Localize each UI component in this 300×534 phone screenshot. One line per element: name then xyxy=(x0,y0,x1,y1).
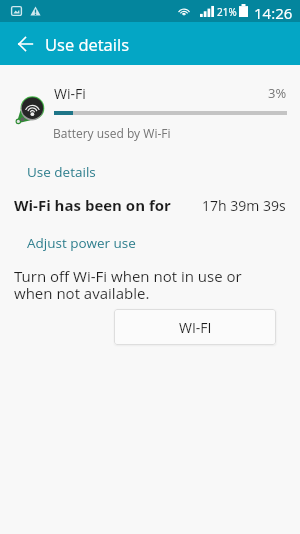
staticText: WI-FI xyxy=(179,318,212,337)
staticText: 21% xyxy=(217,5,237,19)
staticText: Turn off Wi-Fi when not in use or when n… xyxy=(14,266,242,304)
staticText: Adjust power use xyxy=(27,234,136,252)
staticText: 14:26 xyxy=(254,3,293,23)
button[interactable]: Use details xyxy=(14,160,109,184)
staticText: 3% xyxy=(268,84,287,102)
button[interactable]: WI-FI xyxy=(114,309,276,345)
staticText: Use details xyxy=(27,163,96,181)
staticText: Wi-Fi has been on for xyxy=(14,195,171,215)
staticText: Use details xyxy=(45,33,130,55)
staticText: 17h 39m 39s xyxy=(202,196,286,215)
staticText: Battery used by Wi-Fi xyxy=(53,125,171,141)
button[interactable]: Back xyxy=(4,22,46,65)
button[interactable]: Adjust power use xyxy=(14,231,149,255)
staticText: Wi-Fi xyxy=(54,84,86,103)
